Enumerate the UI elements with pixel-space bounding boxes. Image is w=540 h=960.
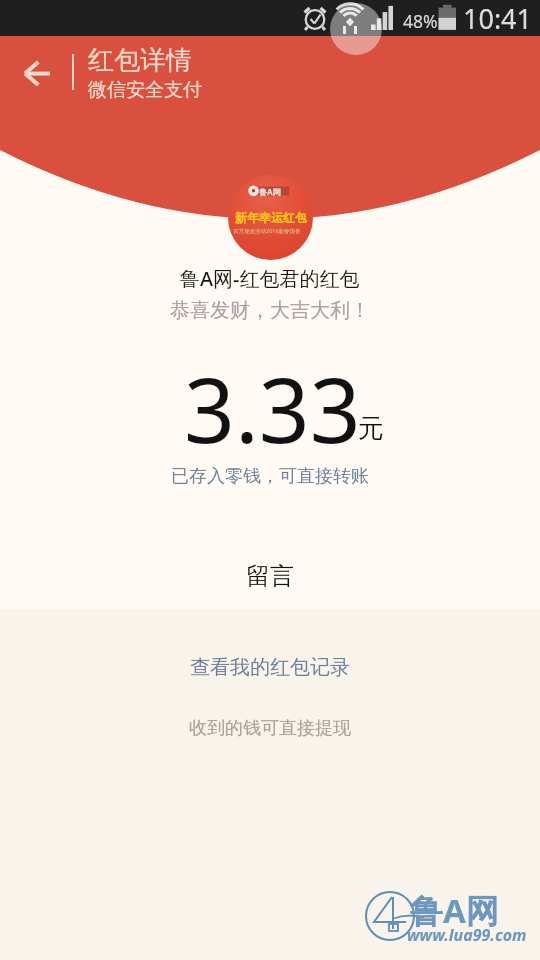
staticText: 红包详情 [88, 44, 192, 77]
staticText: 微信安全支付 [88, 78, 202, 102]
staticText: www.lua99.com [407, 924, 527, 946]
staticText: 3.33 [184, 348, 361, 469]
button[interactable]: 查看我的红包记录 [0, 639, 540, 691]
staticText: 元 [358, 412, 384, 445]
staticText: 百万现金活动2016新春惊喜 [233, 227, 301, 235]
staticText: 新年幸运红包 [235, 210, 307, 225]
staticText: 10:41 [463, 0, 533, 36]
staticText: 48% [403, 9, 438, 33]
staticText: 已存入零钱，可直接转账 [171, 465, 369, 488]
staticText: 收到的钱可直接提现 [189, 717, 351, 740]
staticText: 留言 [246, 561, 294, 591]
staticText: 鲁A网 [410, 888, 499, 933]
staticText: 查看我的红包记录 [190, 655, 350, 680]
button[interactable]: Back [10, 50, 62, 98]
staticText: 鲁A网 [259, 186, 281, 197]
staticText: 恭喜发财，大吉大利！ [170, 298, 370, 323]
staticText: 鲁A网-红包君的红包 [180, 265, 360, 292]
button[interactable]: 留言 [0, 546, 540, 600]
